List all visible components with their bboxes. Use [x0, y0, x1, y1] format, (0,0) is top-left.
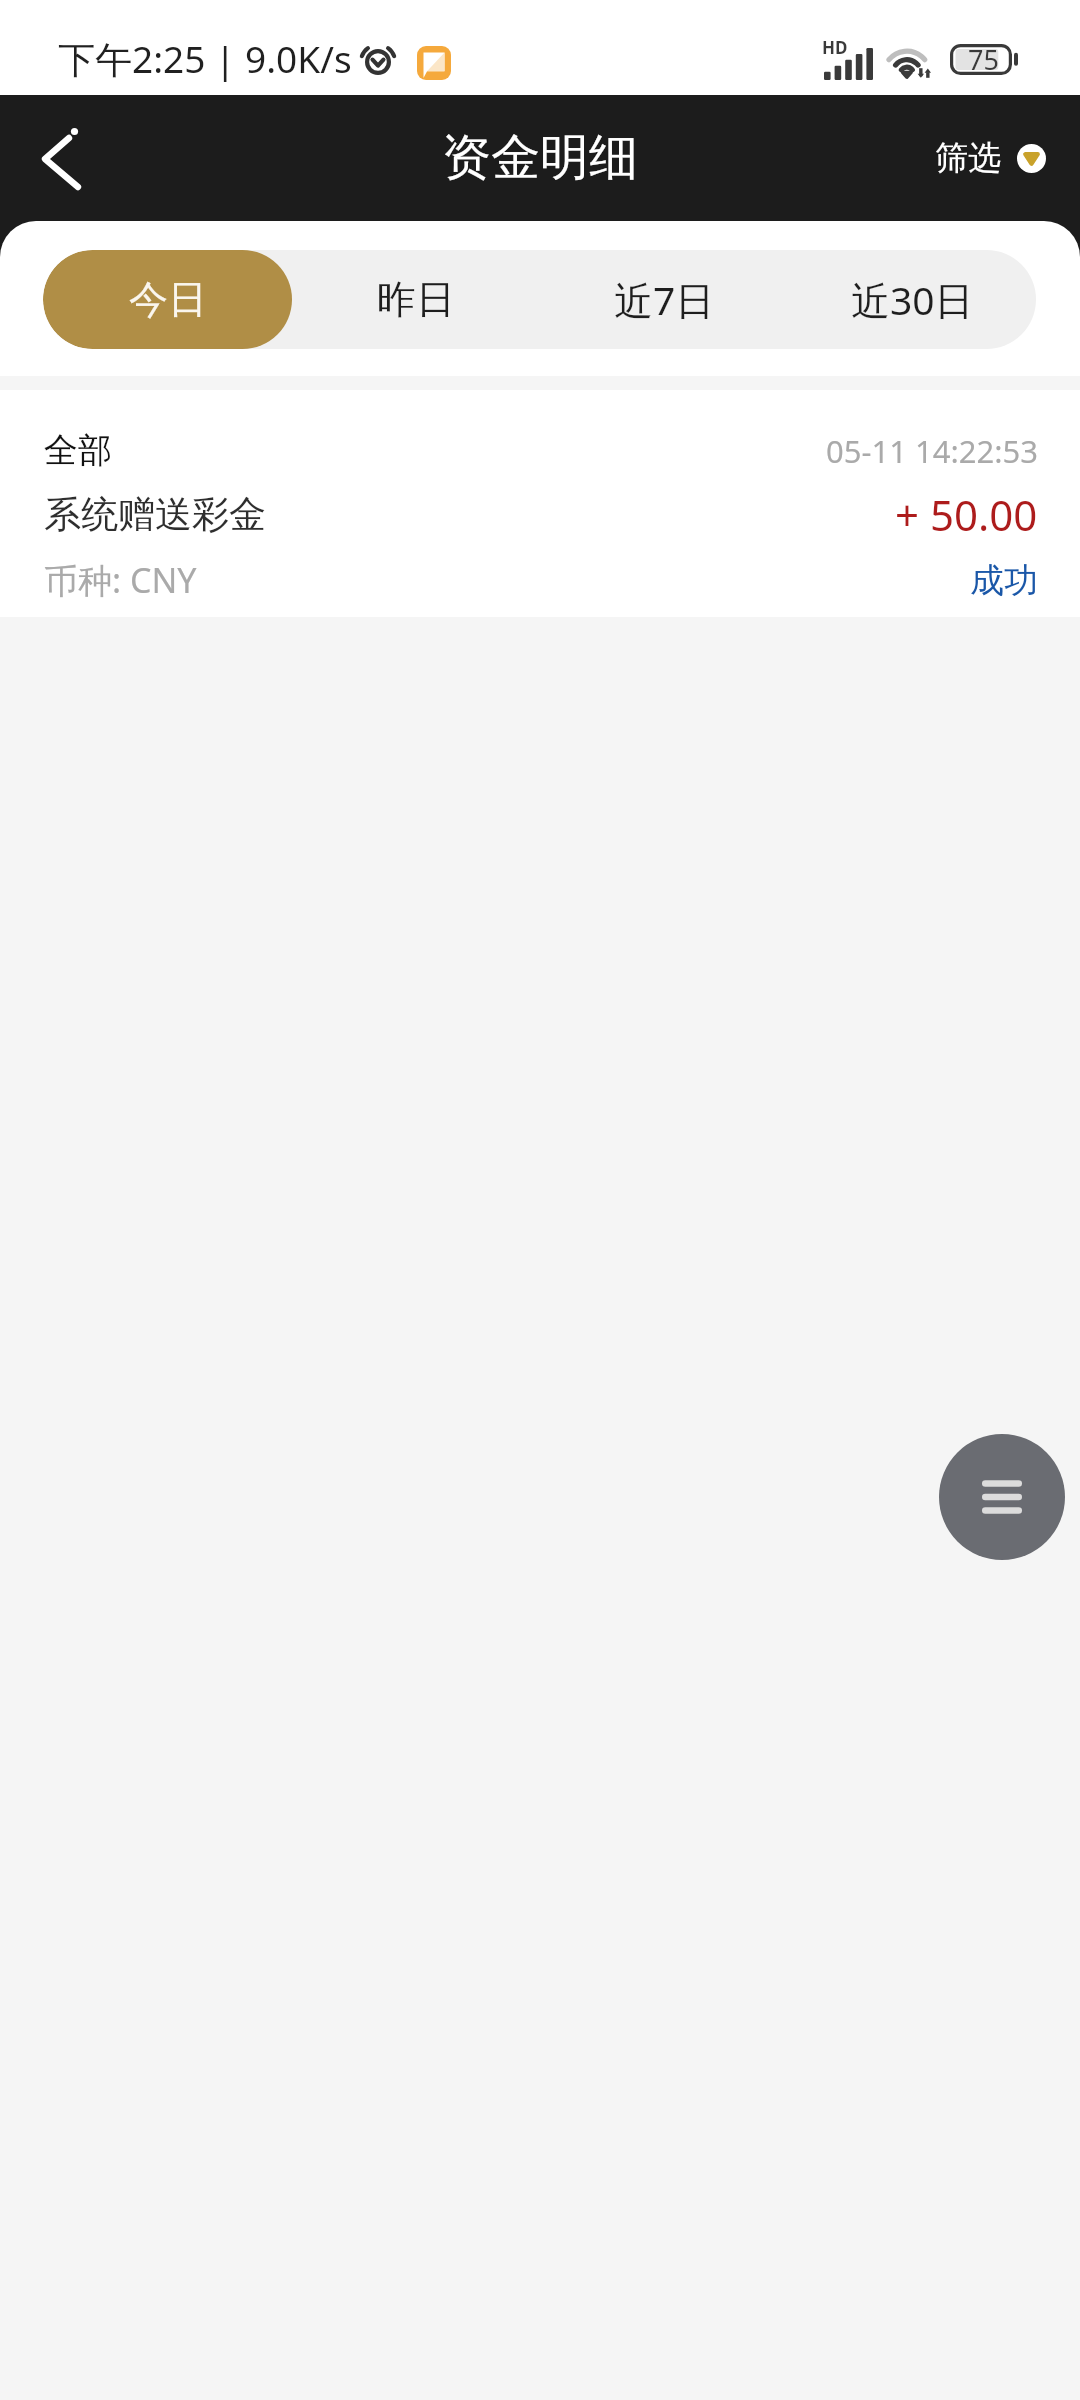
staticText: 全部	[44, 429, 112, 472]
button[interactable]: 全部	[0, 390, 1080, 617]
button[interactable]: 今日	[43, 250, 292, 349]
staticText: 币种: CNY	[44, 557, 197, 603]
staticText: 昨日	[377, 275, 455, 324]
button[interactable]: Back	[4, 103, 114, 213]
button[interactable]: 昨日	[292, 250, 540, 349]
staticText: + 50.00	[895, 486, 1038, 543]
staticText: 近7日	[614, 273, 715, 326]
button[interactable]: 近7日	[540, 250, 788, 349]
staticText: HD	[822, 36, 848, 59]
staticText: 成功	[970, 559, 1038, 602]
staticText: 筛选	[935, 137, 1001, 179]
staticText: 资金明细	[442, 127, 638, 189]
button[interactable]: Menu	[939, 1434, 1065, 1560]
staticText: 近30日	[851, 273, 974, 326]
staticText: 05-11 14:22:53	[826, 430, 1038, 472]
button[interactable]: 筛选	[927, 123, 1054, 193]
staticText: 75	[968, 41, 999, 78]
staticText: 今日	[129, 275, 207, 324]
staticText: 下午2:25 | 9.0K/s	[58, 33, 352, 84]
staticText: 系统赠送彩金	[44, 491, 266, 538]
button[interactable]: 近30日	[788, 250, 1036, 349]
